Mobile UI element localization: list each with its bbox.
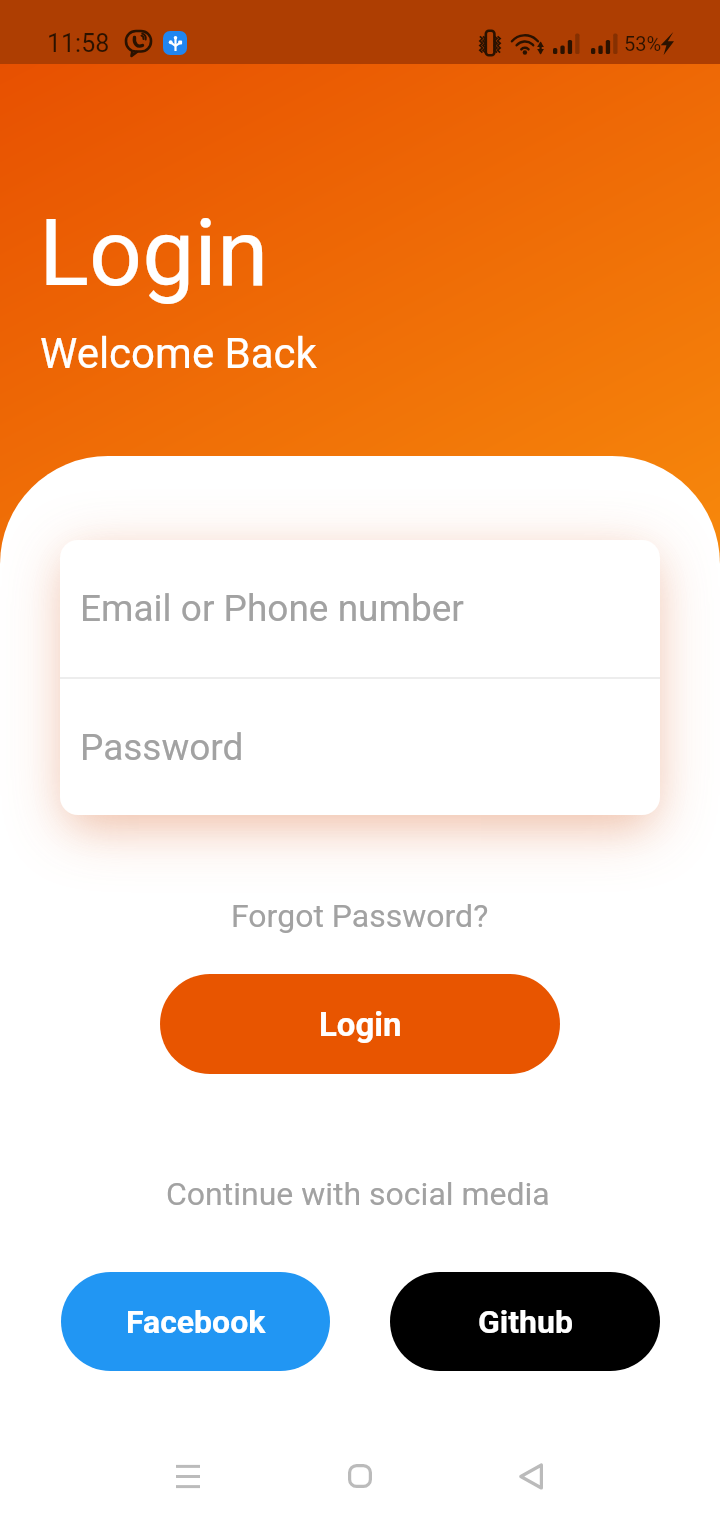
button[interactable]: Recent apps <box>148 1436 228 1516</box>
staticText: Forgot Password? <box>231 897 489 935</box>
staticText: 11:58 <box>47 29 110 58</box>
staticText: Welcome Back <box>40 329 317 378</box>
button[interactable]: Facebook <box>61 1272 330 1371</box>
button[interactable]: Email or Phone number <box>60 540 660 677</box>
button[interactable]: Login <box>160 974 560 1074</box>
staticText: Facebook <box>126 1303 266 1341</box>
staticText: Email or Phone number <box>80 587 464 630</box>
staticText: Github <box>478 1303 573 1341</box>
staticText: Continue with social media <box>166 1175 550 1213</box>
button[interactable]: Back <box>491 1436 571 1516</box>
staticText: Login <box>39 199 269 308</box>
staticText: Password <box>80 726 244 769</box>
staticText: 53% <box>624 32 662 55</box>
button[interactable]: Password <box>60 679 660 815</box>
button[interactable]: Github <box>390 1272 660 1371</box>
button[interactable]: Home <box>320 1436 400 1516</box>
button[interactable]: Forgot Password? <box>217 887 503 945</box>
staticText: Login <box>319 1005 402 1044</box>
